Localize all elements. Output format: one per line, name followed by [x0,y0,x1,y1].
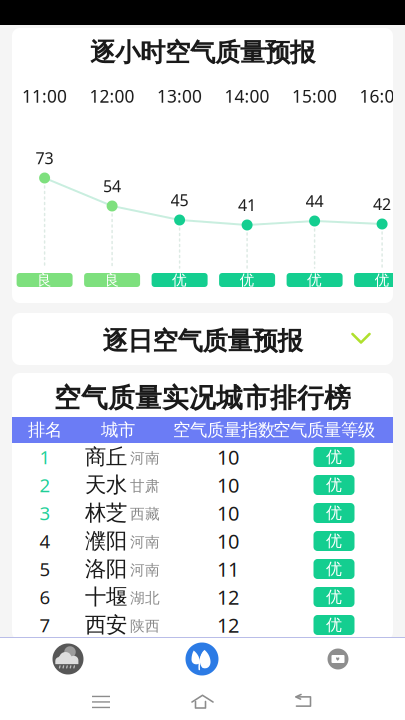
staticText: 41 [238,194,256,216]
staticText: 11 [217,556,239,582]
button[interactable]: Air quality [183,641,221,677]
staticText: 44 [306,190,324,212]
staticText: 西藏 [130,505,160,523]
staticText: 12 [217,612,239,638]
staticText: 河南 [130,533,160,551]
staticText: 洛阳 [85,556,127,582]
staticText: 2 [39,473,50,497]
staticText: 甘肃 [130,477,160,495]
staticText: 10 [217,444,239,470]
button[interactable]: Back [283,688,323,716]
staticText: 3 [39,501,50,525]
staticText: 15:00 [292,84,337,107]
staticText: 13:00 [157,84,202,107]
staticText: 优 [326,503,342,523]
staticText: 优 [326,475,342,495]
staticText: 6 [39,585,50,609]
staticText: 河南 [130,449,160,467]
button[interactable]: 逐日空气质量预报 [12,313,393,365]
staticText: 十堰 [85,584,127,610]
staticText: 逐日空气质量预报 [102,325,302,356]
button[interactable]: Weather [49,641,87,677]
staticText: 7 [39,613,50,637]
staticText: 空气质量等级 [273,419,375,441]
staticText: 陕西 [130,617,160,635]
staticText: 天水 [85,472,127,498]
staticText: 45 [171,189,189,211]
staticText: 良 [37,271,52,289]
staticText: 1 [39,445,50,469]
button[interactable]: More [323,644,353,674]
staticText: 濮阳 [85,528,127,554]
staticText: 4 [39,529,50,553]
staticText: 73 [36,147,54,169]
staticText: 逐小时空气质量预报 [90,37,315,68]
staticText: 优 [375,271,390,289]
staticText: 42 [373,193,391,215]
staticText: 12 [217,584,239,610]
staticText: 10 [217,528,239,554]
staticText: 河南 [130,561,160,579]
staticText: 优 [326,587,342,607]
staticText: 优 [172,271,187,289]
staticText: 14:00 [225,84,270,107]
staticText: 10 [217,500,239,526]
staticText: 12:00 [90,84,135,107]
staticText: 54 [103,175,121,197]
staticText: 商丘 [85,444,127,470]
staticText: 16:00 [360,84,405,107]
staticText: 城市 [101,419,135,441]
staticText: 湖北 [130,589,160,607]
staticText: 优 [326,559,342,579]
staticText: 优 [326,531,342,551]
staticText: 西安 [85,612,127,638]
staticText: 5 [39,557,50,581]
staticText: 优 [326,615,342,635]
button[interactable]: Recents [81,688,121,716]
staticText: 良 [105,271,120,289]
staticText: 空气质量指数 [173,419,275,441]
staticText: 林芝 [85,500,127,526]
button[interactable]: Home [182,688,222,716]
staticText: 空气质量实况城市排行榜 [54,382,351,414]
staticText: 排名 [28,419,62,441]
staticText: 优 [240,271,255,289]
staticText: 11:00 [22,84,67,107]
staticText: 优 [307,271,322,289]
staticText: 10 [217,472,239,498]
staticText: 优 [326,447,342,467]
